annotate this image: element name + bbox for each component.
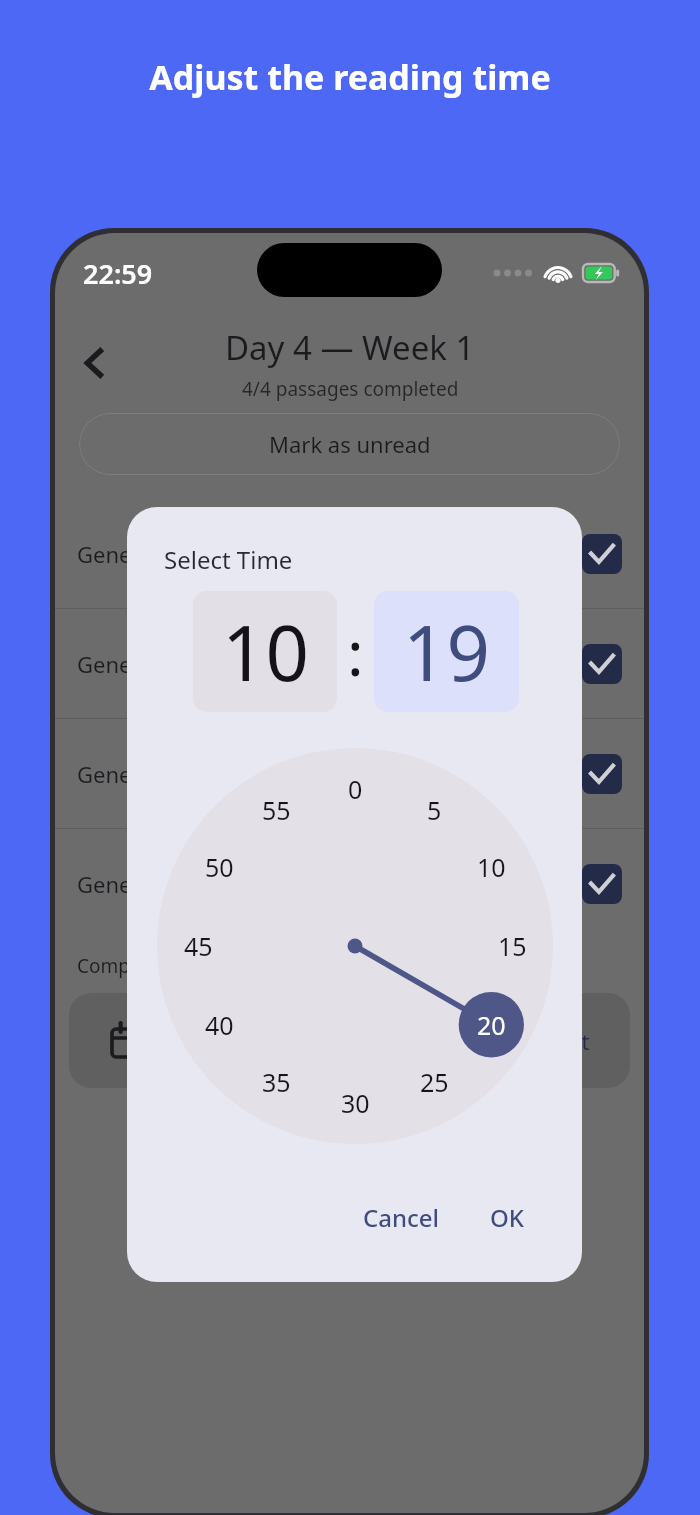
staticText: 45 (184, 929, 213, 963)
button[interactable]: OK (478, 1193, 536, 1242)
staticText: 50 (205, 850, 234, 884)
staticText: Cancel (363, 1201, 440, 1234)
button[interactable]: Mark as unread (79, 413, 620, 475)
button[interactable]: Edit (510, 993, 630, 1088)
staticText: Edit (550, 1026, 590, 1056)
staticText: 5 (427, 793, 442, 827)
button[interactable]: Gene (55, 719, 644, 829)
staticText: 40 (205, 1008, 234, 1042)
button[interactable]: Back (69, 337, 121, 389)
staticText: 25 (420, 1065, 449, 1099)
staticText: Mark as unread (269, 429, 431, 459)
button[interactable]: Cancel (351, 1193, 452, 1242)
staticText: Day 4 — Week 1 (225, 325, 475, 370)
staticText: Gene (77, 869, 582, 899)
staticText: 55 (262, 793, 291, 827)
staticText: OK (490, 1201, 524, 1234)
staticText: 35 (262, 1065, 291, 1099)
button[interactable]: Gene (55, 609, 644, 719)
staticText: 15 (498, 929, 527, 963)
staticText: 0 (348, 772, 363, 806)
staticText: Gene (77, 649, 582, 679)
button[interactable]: Gene (55, 829, 644, 939)
button[interactable]: Calendar (69, 993, 189, 1088)
staticText: 19 (403, 600, 490, 704)
staticText: 30 (341, 1086, 370, 1120)
staticText: 10 (477, 850, 506, 884)
button[interactable]: 10 (193, 591, 337, 712)
staticText: Comp (77, 953, 130, 979)
staticText: Adjust the reading time (0, 54, 700, 100)
staticText: 10 (222, 600, 309, 704)
staticText: Select Time (164, 543, 293, 576)
staticText: 20 (477, 1008, 506, 1042)
staticText: 22:59 (83, 255, 153, 292)
staticText: 4/4 passages completed (242, 376, 459, 402)
staticText: : (347, 610, 364, 694)
staticText: Gene (77, 539, 582, 569)
staticText: Gene (77, 759, 582, 789)
button[interactable]: Gene (55, 499, 644, 609)
button[interactable]: 19 (374, 591, 519, 712)
